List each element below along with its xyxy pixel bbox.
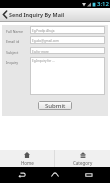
button[interactable]: Category — [55, 150, 110, 167]
button[interactable]: Eg.abc@gmail.com — [30, 36, 105, 44]
button[interactable]: Recent apps — [77, 167, 101, 183]
button[interactable]: Home — [0, 150, 54, 167]
staticText: Full Name — [6, 29, 24, 34]
staticText: 3:12 — [97, 0, 109, 8]
staticText: Inquiry — [6, 60, 19, 65]
staticText: Home — [21, 160, 34, 166]
button[interactable]: Submit — [38, 101, 72, 110]
staticText: Send Inquiry By Mail — [9, 11, 65, 18]
button[interactable]: Eg.Pradip Ahuja — [30, 26, 105, 34]
button[interactable]: Home — [43, 167, 67, 183]
button[interactable]: Back — [0, 8, 9, 21]
staticText: Subject — [6, 50, 19, 55]
staticText: Eg.Inquiry for ... — [32, 59, 55, 63]
staticText: Email id — [6, 39, 20, 44]
staticText: Submit — [45, 102, 66, 110]
button[interactable]: Back — [10, 167, 34, 183]
staticText: Eg.Pradip Ahuja — [32, 29, 55, 33]
staticText: Eg.for more — [32, 50, 49, 54]
button[interactable]: Eg.Inquiry for ... — [30, 57, 105, 95]
staticText: Eg.abc@gmail.com — [32, 39, 59, 43]
button[interactable]: Eg.for more — [30, 47, 105, 54]
staticText: Category — [73, 160, 93, 166]
